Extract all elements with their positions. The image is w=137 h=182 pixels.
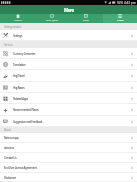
button[interactable]: Contact Us: [0, 153, 137, 163]
button[interactable]: Find Qibla: [35, 14, 69, 23]
button[interactable]: Duas: [69, 14, 103, 23]
staticText: Disclaimer: [4, 176, 16, 180]
staticText: More: [64, 7, 74, 13]
staticText: Suggestion and Feedback: [13, 120, 43, 124]
button[interactable]: End User License Agreement: [0, 163, 137, 173]
staticText: Currency Converter: [13, 52, 36, 56]
staticText: More: [117, 18, 124, 21]
staticText: Home: [14, 18, 22, 21]
button[interactable]: Disclaimer: [0, 173, 137, 182]
staticText: Services: [4, 43, 13, 47]
button[interactable]: Home: [0, 14, 35, 23]
button[interactable]: Settings: [0, 30, 137, 41]
staticText: Related Apps: [13, 97, 28, 101]
button[interactable]: Hajj Travel: [0, 70, 137, 82]
staticText: End User License Agreement: [4, 166, 37, 170]
staticText: About: [4, 128, 11, 132]
staticText: Hajj Travel: [13, 74, 25, 78]
staticText: Rate our app: [4, 136, 19, 140]
button[interactable]: More: [103, 14, 137, 23]
button[interactable]: Recommended Places: [0, 104, 137, 116]
button[interactable]: Rate our app: [0, 133, 137, 143]
staticText: Translation: [13, 63, 26, 67]
staticText: Settings: [13, 34, 23, 38]
staticText: Hajj News: [13, 86, 25, 90]
button[interactable]: Suggestion and Feedback: [0, 116, 137, 127]
staticText: Contact Us: [4, 156, 17, 160]
button[interactable]: Hajj News: [0, 82, 137, 93]
staticText: Settings services: [4, 25, 21, 29]
button[interactable]: Related Apps: [0, 93, 137, 104]
staticText: Find Qibla: [46, 18, 58, 21]
button[interactable]: Translation: [0, 59, 137, 70]
staticText: 92% 4:43 pm: [117, 1, 136, 5]
staticText: about us: [4, 146, 14, 150]
staticText: Duas: [83, 18, 89, 21]
staticText: Recommended Places: [13, 108, 39, 112]
button[interactable]: Currency Converter: [0, 48, 137, 59]
button[interactable]: about us: [0, 143, 137, 153]
